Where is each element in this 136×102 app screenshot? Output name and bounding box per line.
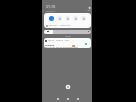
button[interactable]: Recents (73, 94, 83, 102)
button[interactable]: Quick setting 1 (49, 16, 54, 21)
staticText: Gmail · Toolbox · now (48, 39, 69, 42)
button[interactable]: Reply (85, 43, 87, 45)
staticText: 21:16 (46, 4, 56, 9)
staticText: Your order will be delivered today (45, 46, 79, 48)
button[interactable]: Gmail · Toolbox · now (44, 38, 91, 48)
button[interactable]: Quick setting 4 (73, 16, 78, 21)
button[interactable]: Quick setting 5 (81, 16, 86, 21)
button[interactable]: Quick setting 3 (65, 16, 70, 21)
button[interactable]: Brightness (44, 30, 91, 34)
button[interactable]: Back (53, 94, 63, 102)
staticText: Sat, Jan 18 (46, 10, 56, 13)
staticText: Internet · Bluetooth (49, 24, 71, 27)
button[interactable]: Settings (64, 83, 72, 91)
button[interactable]: Home (63, 94, 73, 102)
staticText: Toolbox (45, 43, 55, 46)
button[interactable]: Quick setting 2 (57, 16, 62, 21)
